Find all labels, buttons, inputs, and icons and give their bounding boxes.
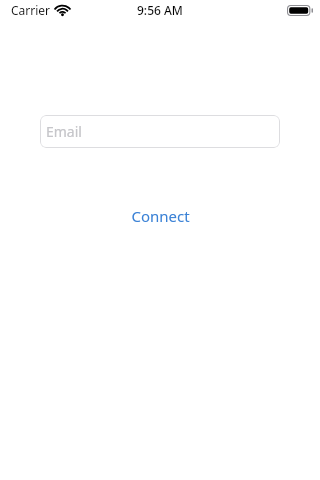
staticText: Connect (131, 206, 190, 226)
button[interactable]: Email (40, 115, 280, 148)
button[interactable]: Connect (0, 205, 320, 227)
staticText: 9:56 AM (137, 2, 183, 18)
staticText: Carrier (11, 2, 51, 18)
other: Battery full (287, 5, 313, 16)
other: Wi-Fi signal (56, 5, 69, 16)
staticText: Email (46, 122, 82, 141)
